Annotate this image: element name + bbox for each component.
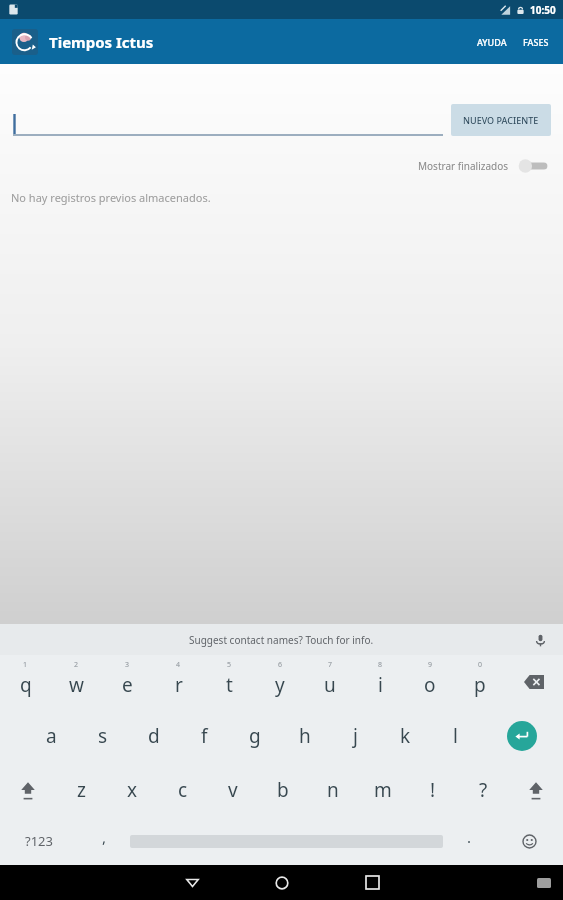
button[interactable]: 8 [355,655,405,709]
staticText: q [20,672,32,698]
button[interactable]: 6 [255,655,305,709]
staticText: w [69,672,84,698]
staticText: b [277,777,289,803]
button[interactable]: Enter [480,709,563,763]
button[interactable]: c [158,763,208,817]
button[interactable]: 1 [0,655,51,709]
staticText: 6 [278,660,283,670]
button[interactable]: l [430,709,480,763]
staticText: j [353,723,358,749]
button[interactable]: NUEVO PACIENTE [451,104,551,136]
button[interactable]: Suggest contact names? Touch for info. [0,624,563,655]
button[interactable]: FASES [515,24,563,60]
staticText: x [127,777,138,803]
button[interactable]: 7 [305,655,355,709]
staticText: 2 [74,660,79,670]
button[interactable]: d [128,709,179,763]
staticText: m [374,777,392,803]
staticText: f [201,723,208,749]
staticText: g [249,723,261,749]
staticText: z [77,777,86,803]
button[interactable]: Back [147,865,237,900]
button[interactable]: Backspace [505,655,563,709]
staticText: t [226,672,233,698]
staticText: 1 [23,660,28,670]
staticText: 10:50 [530,3,556,17]
staticText: 5 [227,660,232,670]
staticText: Tiempos Ictus [49,32,154,52]
button[interactable]: Voice input [531,631,549,649]
button[interactable]: 2 [51,655,102,709]
button[interactable]: Emoji [495,817,563,865]
button[interactable]: 3 [102,655,153,709]
button[interactable]: Recents [327,865,417,900]
staticText: l [453,723,458,749]
staticText: 0 [478,660,483,670]
button[interactable]: 9 [405,655,455,709]
button[interactable]: 5 [204,655,255,709]
staticText: NUEVO PACIENTE [463,114,539,126]
staticText: ?123 [25,832,53,850]
button[interactable]: 0 [455,655,505,709]
button[interactable]: z [56,763,107,817]
staticText: 4 [176,660,181,670]
button[interactable]: Mostrar finalizados [0,158,548,174]
staticText: e [122,672,133,698]
staticText: 9 [428,660,433,670]
staticText: Suggest contact names? Touch for info. [189,633,374,647]
staticText: FASES [523,36,549,48]
button[interactable]: Keyboard [537,878,551,888]
staticText: a [46,723,57,749]
staticText: y [275,672,285,698]
staticText: 8 [378,660,383,670]
button[interactable]: ? [458,763,508,817]
staticText: 3 [125,660,130,670]
button[interactable]: 4 [153,655,204,709]
staticText: AYUDA [477,36,507,48]
button[interactable]: Shift [0,763,56,817]
staticText: Mostrar finalizados [418,159,509,173]
button[interactable]: a [26,709,77,763]
staticText: i [378,672,383,698]
button[interactable]: g [230,709,280,763]
staticText: h [299,723,311,749]
button[interactable]: j [330,709,380,763]
staticText: s [98,723,108,749]
staticText: k [400,723,411,749]
staticText: r [175,672,183,698]
button[interactable]: AYUDA [469,24,515,60]
staticText: . [467,827,472,847]
staticText: , [102,827,107,847]
staticText: c [178,777,188,803]
staticText: n [327,777,339,803]
button[interactable]: v [208,763,258,817]
button[interactable]: k [380,709,430,763]
button[interactable]: Shift [508,763,563,817]
staticText: No hay registros previos almacenados. [11,190,211,205]
staticText: ! [430,777,436,803]
button[interactable]: . [443,817,495,865]
button[interactable]: h [280,709,330,763]
staticText: 7 [328,660,333,670]
button[interactable]: m [358,763,408,817]
button[interactable]: f [179,709,230,763]
staticText: ? [479,777,488,803]
staticText: u [324,672,336,698]
button[interactable]: x [107,763,158,817]
staticText: d [148,723,160,749]
button[interactable]: ?123 [0,817,78,865]
button[interactable]: s [77,709,128,763]
button[interactable]: , [78,817,130,865]
button[interactable]: Home [237,865,327,900]
button[interactable] [13,104,443,136]
button[interactable]: b [258,763,308,817]
button[interactable]: n [308,763,358,817]
staticText: p [474,672,486,698]
staticText: v [228,777,238,803]
button[interactable]: ! [408,763,458,817]
staticText: o [424,672,436,698]
button[interactable]: Space [130,831,443,851]
